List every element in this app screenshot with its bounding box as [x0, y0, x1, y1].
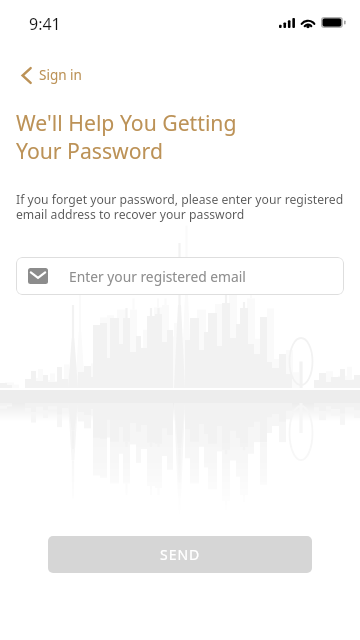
other: Back	[21, 67, 32, 84]
button[interactable]: Enter your registered email	[16, 257, 344, 295]
staticText: We'll Help You Getting Your Password	[16, 108, 237, 165]
staticText: Sign in	[39, 66, 82, 84]
button[interactable]: SEND	[48, 536, 312, 573]
staticText: If you forget your password, please ente…	[16, 191, 344, 223]
staticText: 9:41	[29, 13, 61, 35]
button[interactable]: Back	[16, 61, 87, 89]
staticText: SEND	[160, 545, 201, 564]
staticText: Enter your registered email	[69, 267, 246, 286]
